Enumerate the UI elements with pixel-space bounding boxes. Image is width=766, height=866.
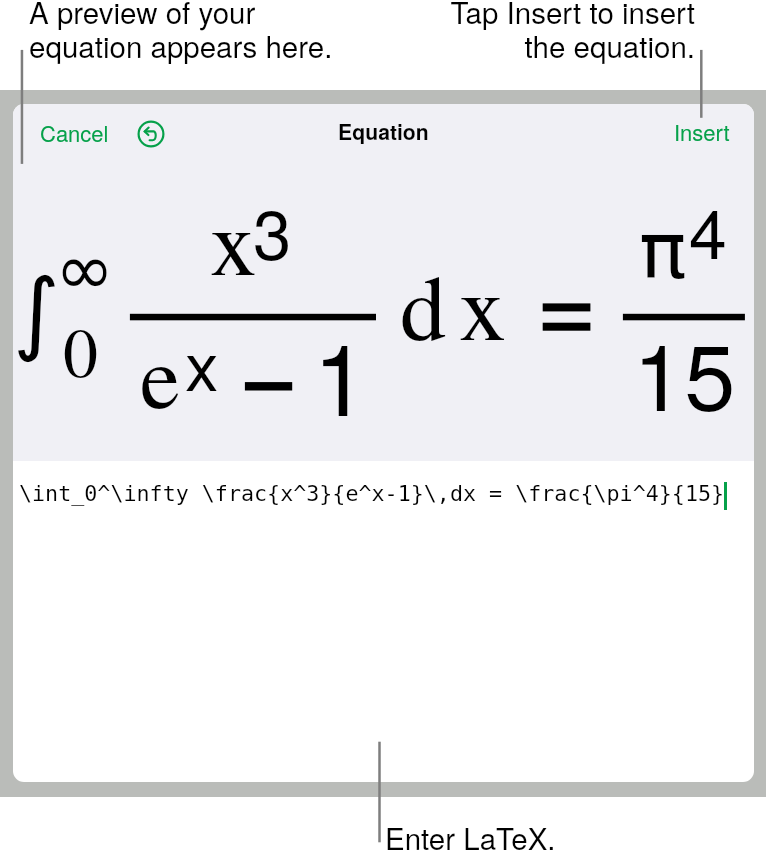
staticText: x [185,314,219,410]
staticText: d [400,243,446,366]
staticText: 0 [63,303,98,397]
staticText: Tap Insert to insert the equation. [420,0,695,70]
staticText: 3 [253,181,292,280]
button[interactable]: Undo [128,111,174,157]
staticText: \int_0^\infty \frac{x^3}{e^x-1}\,dx = \f… [19,481,725,506]
staticText: A preview of your equation appears here. [29,0,333,67]
staticText: Cancel [40,117,109,149]
staticText: e [140,313,180,433]
button[interactable]: Cancel [25,108,135,162]
staticText: 15 [633,305,736,437]
staticText: Insert [674,116,730,148]
staticText: x [210,177,257,301]
staticText: 4 [689,181,727,278]
button[interactable]: \int_0^\infty \frac{x^3}{e^x-1}\,dx = \f… [13,460,754,520]
staticText: ∞ [55,228,115,311]
staticText: π [639,205,687,297]
staticText: Enter LaTeX. [385,816,556,858]
staticText: ∫ [13,259,60,364]
staticText: Equation [338,116,429,146]
button[interactable]: Insert [659,108,743,162]
staticText: 1 [313,302,369,444]
staticText: x [459,241,507,367]
